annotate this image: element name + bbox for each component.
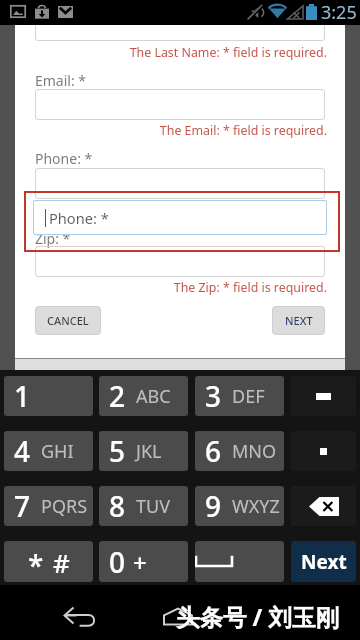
button[interactable]: 5 <box>99 431 188 471</box>
button[interactable] <box>35 246 325 277</box>
staticText: + <box>133 546 147 579</box>
staticText: JKL <box>136 439 162 464</box>
staticText: 0 <box>109 543 126 581</box>
staticText: MNO <box>232 439 277 464</box>
staticText: NEXT <box>285 313 313 328</box>
button[interactable]: dash <box>291 376 356 416</box>
staticText: PQRS <box>41 494 88 519</box>
staticText: TUV <box>136 494 170 519</box>
button[interactable]: 1 <box>4 376 93 416</box>
staticText: # <box>53 545 70 580</box>
button[interactable]: 7 <box>4 486 93 526</box>
button[interactable]: Home <box>155 602 201 630</box>
staticText: Zip: * <box>35 229 71 248</box>
staticText: 4 <box>14 432 31 470</box>
staticText: 2 <box>109 377 126 415</box>
staticText: 5 <box>109 432 126 470</box>
staticText: * <box>28 546 44 582</box>
button[interactable]: Phone: * <box>33 200 327 235</box>
button[interactable]: *# <box>4 541 93 582</box>
button[interactable]: dot <box>291 431 356 471</box>
staticText: The Last Name: * field is required. <box>0 44 327 61</box>
staticText: 9 <box>205 487 222 525</box>
button[interactable]: 9 <box>195 486 284 526</box>
staticText: GHI <box>41 439 74 464</box>
staticText: ABC <box>136 384 171 409</box>
staticText: Next <box>301 549 347 575</box>
button[interactable]: 6 <box>195 431 284 471</box>
button[interactable]: 4 <box>4 431 93 471</box>
button[interactable] <box>35 89 325 120</box>
button[interactable] <box>35 168 325 199</box>
button[interactable]: space <box>195 541 284 582</box>
staticText: The Zip: * field is required. <box>0 279 327 296</box>
staticText: Phone: * <box>35 149 93 168</box>
staticText: 1 <box>14 377 31 415</box>
button[interactable]: del <box>291 486 356 526</box>
button[interactable]: 3 <box>195 376 284 416</box>
staticText: Email: * <box>35 71 87 90</box>
staticText: 6 <box>205 432 222 470</box>
staticText: The Email: * field is required. <box>0 122 327 139</box>
staticText: 3 <box>205 377 222 415</box>
staticText: 头条号 / 刘玉刚 <box>176 601 339 633</box>
staticText: 7 <box>14 487 31 525</box>
button[interactable]: Back <box>55 604 103 632</box>
button[interactable]: 0+ <box>99 541 188 582</box>
button[interactable]: NEXT <box>272 306 325 335</box>
button[interactable]: 8 <box>99 486 188 526</box>
staticText: CANCEL <box>47 313 89 328</box>
staticText: DEF <box>232 384 265 409</box>
staticText: 3:25 <box>321 0 357 25</box>
staticText: WXYZ <box>232 494 280 519</box>
button[interactable]: Next <box>291 541 356 582</box>
button[interactable]: 2 <box>99 376 188 416</box>
staticText: 8 <box>109 487 126 525</box>
button[interactable]: CANCEL <box>35 306 101 335</box>
staticText: Phone: * <box>49 208 109 228</box>
